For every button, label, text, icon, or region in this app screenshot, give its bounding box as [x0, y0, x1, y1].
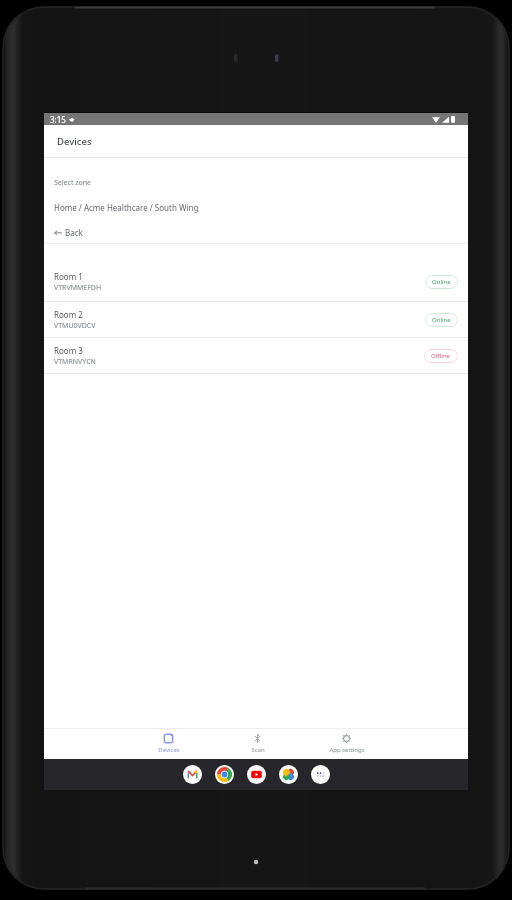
staticText: Scan — [251, 746, 265, 754]
staticText: App settings — [329, 746, 365, 754]
button[interactable]: Gmail — [183, 765, 202, 784]
button[interactable]: Room 3 — [44, 338, 468, 373]
staticText: Online — [432, 278, 451, 286]
button[interactable]: Chrome — [215, 765, 234, 784]
button[interactable]: Room 1 — [44, 263, 468, 301]
staticText: Offline — [431, 352, 451, 360]
button[interactable]: All apps — [311, 765, 330, 784]
staticText: VTMU0VDCV — [54, 321, 96, 331]
button[interactable]: Online — [425, 313, 458, 327]
staticText: Select zone — [54, 178, 92, 188]
button[interactable]: Offline — [424, 349, 458, 363]
button[interactable]: Scan — [213, 729, 302, 759]
button[interactable]: YouTube — [247, 765, 266, 784]
button[interactable]: App settings — [302, 729, 391, 759]
button[interactable]: Room 2 — [44, 302, 468, 337]
staticText: Room 1 — [54, 271, 83, 282]
staticText: Room 2 — [54, 309, 83, 320]
staticText: Back — [65, 227, 83, 238]
button[interactable]: Google Photos — [279, 765, 298, 784]
staticText: Room 3 — [54, 345, 83, 356]
staticText: VTMRNVYCN — [54, 357, 96, 367]
staticText: Home / Acme Healthcare / South Wing — [54, 202, 199, 213]
staticText: Devices — [57, 135, 92, 148]
staticText: Devices — [158, 746, 180, 754]
staticText: 3:15 — [50, 114, 66, 125]
staticText: Online — [432, 316, 451, 324]
button[interactable]: Online — [425, 275, 458, 289]
button[interactable]: Devices — [124, 729, 213, 759]
staticText: VTRVMMEFDH — [54, 283, 102, 293]
button[interactable]: Back — [44, 226, 91, 239]
